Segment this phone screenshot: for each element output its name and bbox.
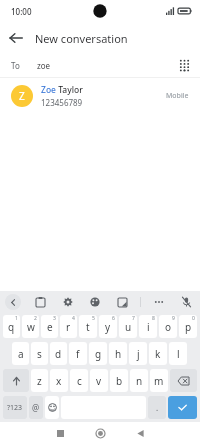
staticText: Zoe [41,84,56,96]
staticText: Z [19,89,25,103]
staticText: q [8,320,15,334]
staticText: 123456789 [41,97,83,108]
button[interactable]: Send [168,396,197,419]
staticText: p [185,320,192,334]
button[interactable]: Z [0,78,200,114]
staticText: 2 [34,315,37,322]
button[interactable]: f [69,342,87,365]
button[interactable]: o [159,315,177,338]
button[interactable]: y [99,315,117,338]
button[interactable]: Back [120,422,160,444]
button[interactable]: d [50,342,67,365]
button[interactable]: w [22,315,39,338]
button[interactable]: Clipboard [31,293,49,311]
staticText: o [165,320,172,334]
button[interactable]: u [119,315,137,338]
staticText: j [137,347,140,361]
button[interactable]: b [110,369,128,392]
button[interactable]: Settings [59,293,77,311]
staticText: c [77,374,82,388]
button[interactable]: Themes [86,293,104,311]
staticText: Taylor [56,84,83,96]
staticText: a [18,347,24,361]
button[interactable]: More options [150,293,168,311]
staticText: @ [32,402,40,413]
staticText: 5 [92,315,95,322]
button[interactable]: c [70,369,88,392]
staticText: m [154,374,164,388]
staticText: l [177,347,180,361]
staticText: zoe [37,60,51,71]
staticText: n [136,374,143,388]
button[interactable]: Emoji [45,396,59,419]
button[interactable]: s [31,342,48,365]
staticText: 6 [112,315,115,322]
staticText: 0 [192,315,195,322]
button[interactable]: Collapse toolbar [5,294,21,310]
staticText: k [155,347,161,361]
staticText: r [66,320,71,334]
staticText: e [47,320,53,334]
staticText: 3 [53,315,56,322]
staticText: 9 [172,315,175,322]
staticText: 4 [72,315,75,322]
button[interactable]: p [179,315,197,338]
staticText: . [156,402,159,413]
button[interactable]: h [109,342,127,365]
staticText: To [11,60,20,71]
button[interactable]: n [130,369,148,392]
staticText: ?123 [7,403,23,413]
staticText: f [76,347,80,361]
button[interactable]: r [60,315,77,338]
staticText: t [86,320,90,334]
button[interactable]: g [89,342,107,365]
button[interactable]: Resize keyboard [113,293,131,311]
staticText: Mobile [166,91,189,101]
staticText: 7 [132,315,135,322]
staticText: s [37,347,42,361]
button[interactable]: . [148,396,166,419]
staticText: x [56,374,62,388]
staticText: u [125,320,132,334]
button[interactable]: q [3,315,20,338]
button[interactable]: Home [80,422,120,444]
button[interactable]: z [31,369,48,392]
staticText: 10:00 [11,6,32,17]
button[interactable]: m [150,369,168,392]
staticText: New conversation [35,31,128,46]
staticText: v [96,374,102,388]
button[interactable]: i [139,315,157,338]
button[interactable]: Voice input off [177,293,195,311]
button[interactable]: t [79,315,97,338]
staticText: y [105,320,111,334]
staticText: 8 [152,315,155,322]
button[interactable]: l [169,342,187,365]
button[interactable]: Backspace [170,369,197,392]
staticText: w [27,320,35,334]
button[interactable]: Back [0,22,32,54]
button[interactable]: @ [29,396,43,419]
staticText: d [55,347,62,361]
staticText: h [115,347,122,361]
staticText: 1 [15,315,18,322]
button[interactable]: Recent apps [40,422,80,444]
button[interactable]: x [50,369,68,392]
button[interactable]: Shift [3,369,29,392]
staticText: b [116,374,123,388]
button[interactable]: Dialpad [171,54,197,77]
button[interactable]: ?123 [3,396,27,419]
button[interactable]: v [90,369,108,392]
button[interactable]: k [149,342,167,365]
staticText: i [147,320,150,334]
staticText: g [95,347,102,361]
button[interactable]: e [41,315,58,338]
button[interactable]: a [12,342,29,365]
button[interactable]: j [129,342,147,365]
staticText: z [37,374,42,388]
